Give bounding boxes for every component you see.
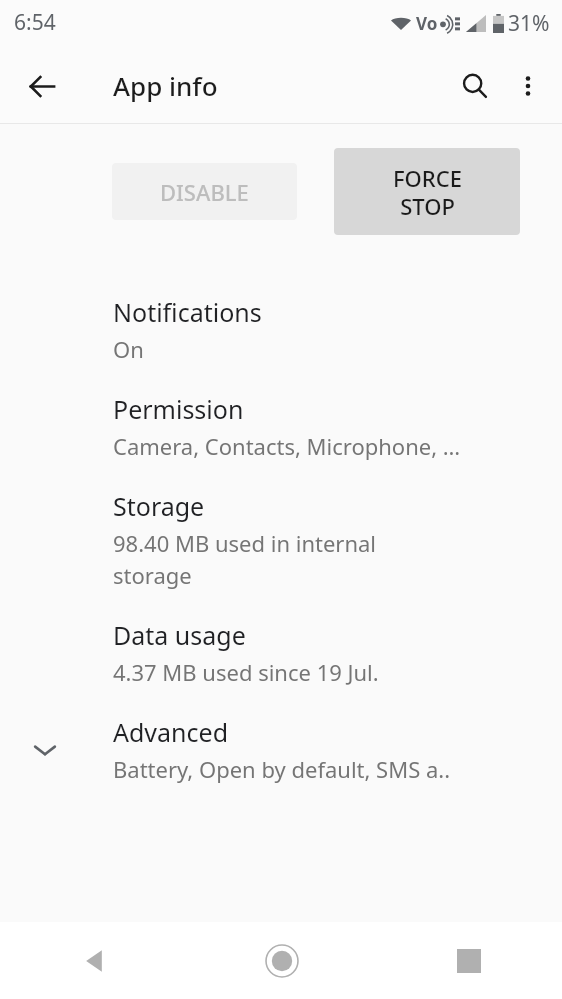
button[interactable]: DISABLE: [112, 163, 297, 220]
staticText: App info: [113, 68, 218, 103]
staticText: DISABLE: [160, 177, 249, 207]
staticText: FORCE STOP: [393, 163, 462, 221]
staticText: Permission: [113, 392, 244, 426]
button[interactable]: Data usage: [0, 606, 562, 703]
staticText: Advanced: [113, 715, 229, 749]
button[interactable]: Back: [16, 60, 68, 112]
staticText: Storage: [113, 489, 205, 523]
button[interactable]: Search: [448, 59, 502, 113]
button[interactable]: Storage: [0, 477, 562, 606]
staticText: Vo: [416, 12, 438, 35]
staticText: 6:54: [14, 8, 56, 37]
staticText: storage: [113, 560, 192, 590]
button[interactable]: Back: [0, 922, 188, 999]
button[interactable]: Permission: [0, 380, 562, 477]
staticText: On: [113, 334, 144, 364]
button[interactable]: Notifications: [0, 283, 562, 380]
staticText: Battery, Open by default, SMS a..: [113, 754, 451, 784]
button[interactable]: FORCE STOP: [334, 148, 520, 235]
staticText: Data usage: [113, 618, 246, 652]
staticText: Notifications: [113, 295, 262, 329]
staticText: 31%: [508, 9, 550, 38]
button[interactable]: Recent apps: [375, 922, 562, 999]
staticText: 98.40 MB used in internal: [113, 528, 377, 558]
button[interactable]: More options: [502, 60, 554, 112]
staticText: 4.37 MB used since 19 Jul.: [113, 657, 379, 687]
button[interactable]: Advanced: [0, 703, 562, 800]
staticText: Camera, Contacts, Microphone, …: [113, 431, 461, 461]
button[interactable]: Home: [188, 922, 375, 999]
